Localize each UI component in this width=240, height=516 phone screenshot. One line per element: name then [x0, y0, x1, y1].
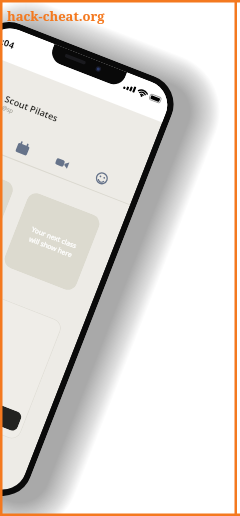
- button[interactable]: Calendar: [8, 133, 37, 162]
- button[interactable]: [0, 361, 23, 432]
- staticText: 9:04: [0, 33, 16, 51]
- staticText: hack-cheat.org: [7, 7, 105, 25]
- staticText: Your next class will show here: [26, 225, 78, 260]
- staticText: Scout Pilates: [3, 92, 61, 124]
- button[interactable]: [0, 156, 16, 259]
- button[interactable]: Profile: [88, 164, 116, 193]
- staticText: @sp: [0, 103, 14, 115]
- button[interactable]: Your next class will show here: [2, 190, 102, 293]
- button[interactable]: [0, 262, 64, 442]
- button[interactable]: Video: [48, 148, 76, 177]
